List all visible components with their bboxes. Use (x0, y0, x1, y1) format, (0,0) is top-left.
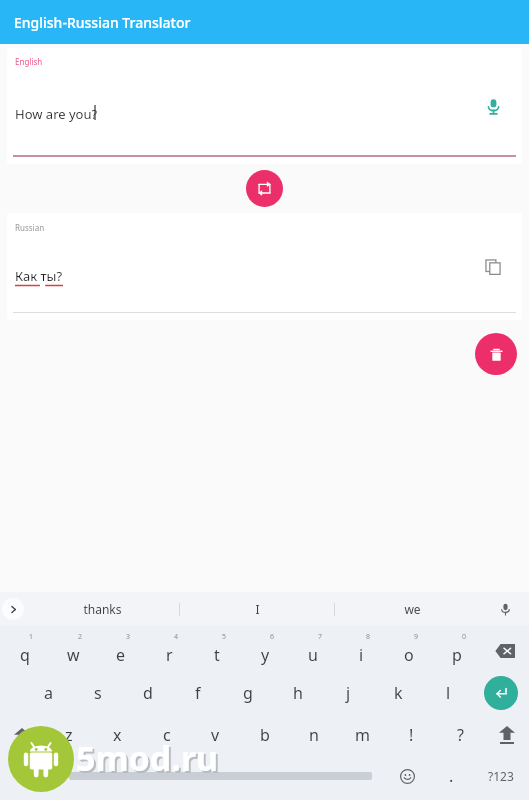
button[interactable]: m (338, 714, 387, 756)
staticText: f (195, 682, 201, 704)
button[interactable]: j (323, 672, 373, 714)
button[interactable]: ?123 (473, 756, 529, 796)
staticText: v (211, 724, 220, 746)
staticText: r (166, 644, 173, 666)
staticText: x (113, 724, 122, 746)
button[interactable]: 1 (0, 630, 49, 672)
staticText: we (404, 601, 421, 617)
button[interactable]: Copy translation (476, 250, 510, 284)
staticText: How are you? (15, 105, 98, 123)
staticText: English-Russian Translator (14, 13, 191, 32)
staticText: h (293, 682, 303, 704)
staticText: i (359, 644, 364, 666)
staticText: 8 (366, 632, 371, 642)
button[interactable]: English (7, 48, 522, 164)
staticText: l (446, 682, 451, 704)
button[interactable]: I (180, 592, 334, 626)
staticText: Russian (15, 222, 45, 233)
button[interactable]: Russian (7, 213, 522, 320)
button[interactable]: z (44, 714, 93, 756)
button[interactable]: 8 (337, 630, 385, 672)
staticText: ! (409, 724, 414, 746)
button[interactable]: Switch language (0, 756, 56, 796)
button[interactable]: Clear text (475, 333, 517, 375)
staticText: b (260, 724, 270, 746)
staticText: g (243, 682, 253, 704)
staticText: 4 (174, 632, 179, 642)
button[interactable]: 4 (145, 630, 193, 672)
staticText: . (449, 765, 454, 787)
staticText: English (15, 56, 43, 67)
staticText: q (20, 644, 30, 666)
staticText: o (404, 644, 414, 666)
button[interactable]: l (423, 672, 473, 714)
button[interactable]: b (240, 714, 289, 756)
button[interactable]: thanks (26, 592, 179, 626)
staticText: z (65, 724, 73, 746)
button[interactable]: h (273, 672, 323, 714)
button[interactable]: g (223, 672, 273, 714)
staticText: 9 (414, 632, 419, 642)
staticText: a (44, 682, 53, 704)
staticText: 0 (462, 632, 467, 642)
staticText: 5mod.ru (76, 735, 219, 781)
staticText: thanks (83, 601, 122, 617)
staticText: t (214, 644, 220, 666)
staticText: m (355, 724, 370, 746)
button[interactable]: 0 (433, 630, 481, 672)
button[interactable]: 2 (49, 630, 97, 672)
staticText: 5mod.ru (78, 737, 221, 783)
staticText: 2 (78, 632, 83, 642)
staticText: Как ты? (15, 267, 63, 285)
staticText: e (116, 644, 126, 666)
button[interactable]: 9 (385, 630, 433, 672)
staticText: j (346, 682, 351, 704)
button[interactable]: v (191, 714, 240, 756)
button[interactable]: 3 (97, 630, 145, 672)
staticText: d (143, 682, 153, 704)
button[interactable]: Emoji (385, 756, 429, 796)
staticText: p (452, 644, 462, 666)
staticText: ?123 (488, 768, 514, 784)
button[interactable]: 7 (289, 630, 337, 672)
button[interactable]: s (73, 672, 123, 714)
button[interactable]: . (429, 756, 473, 796)
button[interactable]: d (123, 672, 173, 714)
staticText: 6 (270, 632, 275, 642)
button[interactable]: More suggestions (2, 598, 24, 620)
button[interactable]: c (142, 714, 191, 756)
button[interactable]: Voice typing (493, 597, 517, 621)
button[interactable]: f (173, 672, 223, 714)
staticText: 1 (29, 632, 34, 642)
button[interactable]: 5 (193, 630, 241, 672)
staticText: n (309, 724, 319, 746)
staticText: k (394, 682, 403, 704)
staticText: u (308, 644, 318, 666)
button[interactable]: Shift (0, 714, 44, 756)
button[interactable]: ! (387, 714, 436, 756)
button[interactable]: ? (436, 714, 485, 756)
button[interactable] (56, 756, 385, 796)
button[interactable]: x (93, 714, 142, 756)
button[interactable]: we (335, 592, 489, 626)
button[interactable]: Enter (473, 672, 529, 714)
staticText: 7 (318, 632, 323, 642)
staticText: s (94, 682, 102, 704)
button[interactable]: 6 (241, 630, 289, 672)
staticText: c (163, 724, 171, 746)
staticText: ? (457, 724, 464, 746)
button[interactable]: Swap languages (246, 170, 283, 207)
staticText: 3 (126, 632, 131, 642)
button[interactable]: Backspace (481, 630, 529, 672)
button[interactable]: a (24, 672, 73, 714)
button[interactable]: Caps lock (485, 714, 529, 756)
button[interactable]: k (373, 672, 423, 714)
staticText: w (67, 644, 80, 666)
button[interactable]: n (289, 714, 338, 756)
staticText: 5 (222, 632, 227, 642)
button[interactable]: Voice input (476, 89, 510, 123)
staticText: y (261, 644, 270, 666)
staticText: I (255, 601, 260, 617)
